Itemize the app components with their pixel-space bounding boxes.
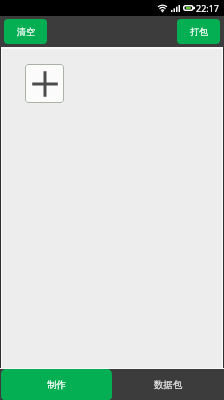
button[interactable]: 制作 [1, 369, 112, 400]
staticText: 制作 [47, 379, 66, 391]
button[interactable]: 清空 [4, 19, 47, 44]
button[interactable]: 数据包 [112, 369, 224, 400]
staticText: 打包 [190, 26, 208, 37]
button[interactable]: Add [25, 64, 64, 103]
staticText: 清空 [17, 26, 35, 37]
staticText: 数据包 [154, 379, 183, 391]
staticText: 22:17 [196, 2, 220, 14]
button[interactable]: 打包 [177, 19, 220, 44]
